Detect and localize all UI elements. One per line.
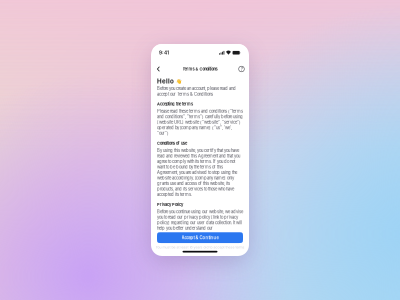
button[interactable]: Help [236,63,247,75]
staticText: Accepting the terms [157,102,193,106]
staticText: Conditions of use [157,141,187,146]
staticText: Please read these terms and conditions (… [157,109,243,136]
button[interactable]: Back [153,63,164,75]
staticText: Hello [157,77,174,85]
button[interactable]: Accept & Continue [157,232,243,243]
staticText: 9:41 [159,50,169,56]
staticText: Accept & Continue [181,235,218,240]
staticText: ? [240,66,242,72]
staticText: Before you create an account, please rea… [157,86,236,97]
staticText: By using this website, you certify that … [157,148,240,197]
staticText: 👋 [175,78,181,84]
staticText: Before you continue using our website, w… [157,209,243,231]
staticText: You must be at least 18 years old to acc… [155,245,244,249]
staticText: Privacy Policy [157,202,183,207]
staticText: Terms & Conditions [182,67,217,71]
